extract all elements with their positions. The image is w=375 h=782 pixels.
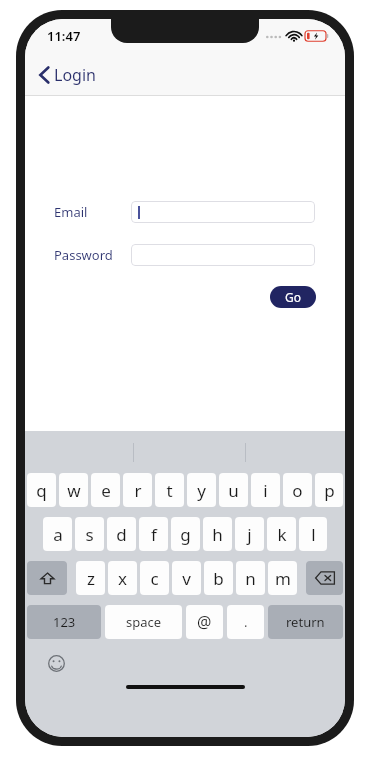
- staticText: z: [87, 567, 95, 590]
- staticText: d: [116, 523, 127, 546]
- staticText: m: [275, 567, 291, 590]
- button[interactable]: a: [43, 517, 72, 551]
- button[interactable]: j: [235, 517, 264, 551]
- button[interactable]: q: [27, 473, 56, 507]
- button[interactable]: z: [76, 561, 105, 595]
- staticText: r: [134, 479, 142, 502]
- staticText: y: [197, 479, 206, 502]
- button[interactable]: Go: [270, 286, 316, 308]
- button[interactable]: m: [268, 561, 297, 595]
- staticText: u: [228, 479, 239, 502]
- staticText: c: [150, 567, 159, 590]
- staticText: Email: [54, 203, 131, 221]
- button[interactable]: [131, 244, 315, 266]
- button[interactable]: t: [155, 473, 184, 507]
- staticText: p: [324, 479, 335, 502]
- button[interactable]: @: [186, 605, 223, 639]
- button[interactable]: o: [283, 473, 312, 507]
- button[interactable]: r: [123, 473, 152, 507]
- staticText: f: [151, 523, 157, 546]
- staticText: @: [197, 611, 212, 633]
- button[interactable]: e: [91, 473, 120, 507]
- staticText: .: [244, 613, 248, 631]
- staticText: q: [36, 479, 47, 502]
- button[interactable]: h: [203, 517, 232, 551]
- button[interactable]: c: [140, 561, 169, 595]
- button[interactable]: 123: [27, 605, 101, 639]
- staticText: e: [101, 479, 111, 502]
- staticText: s: [85, 523, 94, 546]
- staticText: n: [245, 567, 256, 590]
- staticText: v: [182, 567, 191, 590]
- button[interactable]: i: [251, 473, 280, 507]
- staticText: x: [118, 567, 127, 590]
- button[interactable]: l: [299, 517, 327, 551]
- staticText: Login: [54, 64, 96, 86]
- staticText: k: [277, 523, 287, 546]
- button[interactable]: Backspace: [306, 561, 343, 595]
- button[interactable]: y: [187, 473, 216, 507]
- button[interactable]: k: [267, 517, 296, 551]
- staticText: h: [212, 523, 223, 546]
- button[interactable]: n: [236, 561, 265, 595]
- button[interactable]: s: [75, 517, 104, 551]
- button[interactable]: .: [227, 605, 264, 639]
- staticText: Password: [54, 246, 131, 264]
- button[interactable]: g: [171, 517, 200, 551]
- staticText: return: [286, 613, 325, 631]
- staticText: w: [67, 479, 81, 502]
- staticText: 11:47: [47, 27, 81, 45]
- staticText: t: [166, 479, 173, 502]
- button[interactable]: Shift: [27, 561, 67, 595]
- button[interactable]: p: [315, 473, 343, 507]
- button[interactable]: f: [139, 517, 168, 551]
- button[interactable]: b: [204, 561, 233, 595]
- staticText: g: [180, 523, 191, 546]
- staticText: 123: [53, 613, 76, 631]
- button[interactable]: [131, 201, 315, 223]
- button[interactable]: d: [107, 517, 136, 551]
- staticText: Go: [285, 289, 301, 305]
- button[interactable]: v: [172, 561, 201, 595]
- button[interactable]: w: [59, 473, 88, 507]
- staticText: a: [53, 523, 63, 546]
- button[interactable]: return: [268, 605, 343, 639]
- button[interactable]: Emoji: [43, 650, 69, 676]
- staticText: space: [126, 613, 162, 631]
- button[interactable]: x: [108, 561, 137, 595]
- staticText: b: [213, 567, 224, 590]
- staticText: l: [311, 523, 316, 546]
- staticText: i: [263, 479, 268, 502]
- button[interactable]: space: [105, 605, 182, 639]
- staticText: j: [247, 523, 252, 546]
- button[interactable]: u: [219, 473, 248, 507]
- button[interactable]: Login: [35, 60, 100, 90]
- staticText: o: [292, 479, 303, 502]
